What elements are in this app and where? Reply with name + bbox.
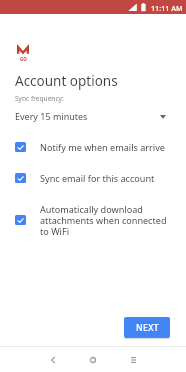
staticText: Sync email for this account: [40, 172, 155, 184]
staticText: 11:11 AM: [151, 3, 183, 13]
staticText: Sync frequency:: [15, 94, 64, 103]
button[interactable]: Automatically download attachments when …: [0, 203, 186, 237]
button[interactable]: NEXT: [124, 317, 170, 338]
button[interactable]: Sync email for this account: [0, 172, 186, 184]
button[interactable]: Recent apps: [113, 347, 153, 372]
button[interactable]: Back: [33, 347, 73, 372]
staticText: Account options: [15, 72, 118, 90]
button[interactable]: Notify me when emails arrive: [0, 141, 186, 153]
button[interactable]: Home: [73, 347, 113, 372]
staticText: NEXT: [136, 322, 159, 334]
staticText: GO: [20, 56, 27, 62]
staticText: Automatically download attachments when …: [40, 203, 168, 237]
staticText: Notify me when emails arrive: [40, 141, 165, 153]
staticText: Every 15 minutes: [15, 110, 88, 122]
button[interactable]: Every 15 minutes: [0, 110, 186, 122]
